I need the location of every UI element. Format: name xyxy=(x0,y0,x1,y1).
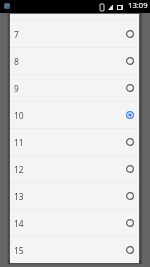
staticText: 13:09 xyxy=(128,0,148,10)
button[interactable]: 11 xyxy=(10,128,139,155)
staticText: 7 xyxy=(14,29,19,40)
staticText: 10 xyxy=(14,110,24,121)
button[interactable]: 13 xyxy=(10,182,139,209)
button[interactable]: 7 xyxy=(10,20,139,47)
button[interactable]: 15 xyxy=(10,236,139,263)
button[interactable]: 9 xyxy=(10,74,139,101)
staticText: 11 xyxy=(14,137,24,148)
other: Notification xyxy=(4,3,10,9)
button[interactable]: 10 xyxy=(10,101,139,128)
staticText: 15 xyxy=(14,245,24,256)
staticText: 12 xyxy=(14,164,24,175)
button[interactable]: 8 xyxy=(10,47,139,74)
staticText: 14 xyxy=(14,218,24,229)
staticText: 9 xyxy=(14,83,19,94)
staticText: 8 xyxy=(14,56,19,67)
button[interactable]: 14 xyxy=(10,209,139,236)
staticText: 13 xyxy=(14,191,24,202)
button[interactable]: 12 xyxy=(10,155,139,182)
